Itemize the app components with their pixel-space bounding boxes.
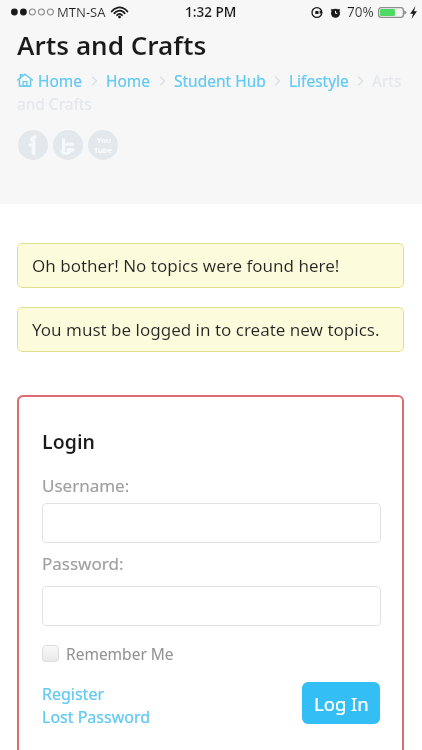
staticText: You bbox=[97, 135, 111, 145]
button[interactable]: You must be logged in to create new topi… bbox=[17, 307, 404, 352]
staticText: Arts and Crafts bbox=[17, 27, 207, 62]
button[interactable]: Twitter bbox=[53, 130, 83, 160]
staticText: Tube bbox=[94, 145, 113, 155]
button[interactable]: YouTube bbox=[88, 130, 118, 160]
button[interactable]: Oh bother! No topics were found here! bbox=[17, 243, 404, 288]
staticText: 70% bbox=[347, 3, 374, 21]
staticText: 1:32 PM bbox=[185, 3, 237, 21]
staticText: Login bbox=[42, 428, 95, 455]
button[interactable]: Home bbox=[38, 70, 83, 91]
button[interactable] bbox=[42, 503, 381, 543]
staticText: and Crafts bbox=[17, 93, 92, 114]
staticText: Log In bbox=[314, 691, 369, 716]
button[interactable]: Remember Me bbox=[42, 643, 174, 664]
staticText: Oh bother! No topics were found here! bbox=[32, 254, 340, 277]
staticText: Remember Me bbox=[66, 643, 174, 664]
button[interactable]: Log In bbox=[302, 682, 380, 724]
button[interactable]: Lost Password bbox=[42, 706, 151, 728]
button[interactable]: Facebook bbox=[18, 130, 48, 160]
button[interactable]: Home bbox=[17, 72, 33, 88]
button[interactable]: Home bbox=[106, 70, 151, 91]
button[interactable]: Lifestyle bbox=[289, 70, 349, 91]
button[interactable] bbox=[42, 586, 381, 626]
button[interactable]: Register bbox=[42, 683, 105, 705]
staticText: Password: bbox=[42, 552, 124, 575]
staticText: You must be logged in to create new topi… bbox=[32, 318, 380, 341]
staticText: MTN-SA bbox=[57, 3, 106, 21]
button[interactable]: Student Hub bbox=[174, 70, 266, 91]
staticText: Arts bbox=[372, 70, 402, 91]
staticText: Username: bbox=[42, 474, 130, 497]
